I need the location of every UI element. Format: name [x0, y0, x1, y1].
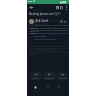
staticText: This message and any files transmitted w… — [29, 45, 68, 55]
button[interactable]: Reply all — [43, 72, 56, 80]
staticText: Hi Jill, thanks again for making the tim… — [29, 24, 69, 29]
staticText: Thanks again, — [33, 35, 47, 38]
button[interactable]: More options — [63, 4, 69, 10]
staticText: 9:41 ✉ — [28, 0, 35, 3]
button[interactable]: Archive — [54, 4, 60, 10]
staticText: • Confirm the nesting sites before the n… — [30, 27, 69, 32]
button[interactable]: Star — [59, 19, 64, 24]
staticText: Reply all — [45, 77, 54, 80]
button[interactable]: Reply — [29, 72, 42, 80]
staticText: Let me know if this time still works for… — [29, 32, 69, 35]
button[interactable]: Back — [28, 4, 34, 10]
button[interactable]: Reply — [63, 19, 68, 24]
staticText: ▲ ▮ ▮ — [60, 0, 66, 3]
staticText: to me — [35, 22, 42, 25]
button[interactable]: Delete — [58, 4, 64, 10]
staticText: Jill A. Smith — [35, 19, 49, 22]
staticText: 2:41 PM — [50, 19, 59, 22]
staticText: Nesting phone survey — [29, 12, 58, 16]
button[interactable]: Forward — [57, 72, 68, 80]
staticText: View the survey results — [34, 38, 57, 41]
staticText: Forward — [58, 77, 67, 80]
button[interactable]: Home — [46, 85, 50, 89]
staticText: Reply — [33, 77, 39, 80]
button[interactable]: Back — [33, 85, 38, 90]
staticText: and share the survey images with the tea… — [31, 29, 69, 34]
staticText: Inbox — [54, 12, 60, 15]
button[interactable]: View the survey results — [34, 38, 57, 41]
button[interactable]: Recents — [57, 85, 61, 89]
